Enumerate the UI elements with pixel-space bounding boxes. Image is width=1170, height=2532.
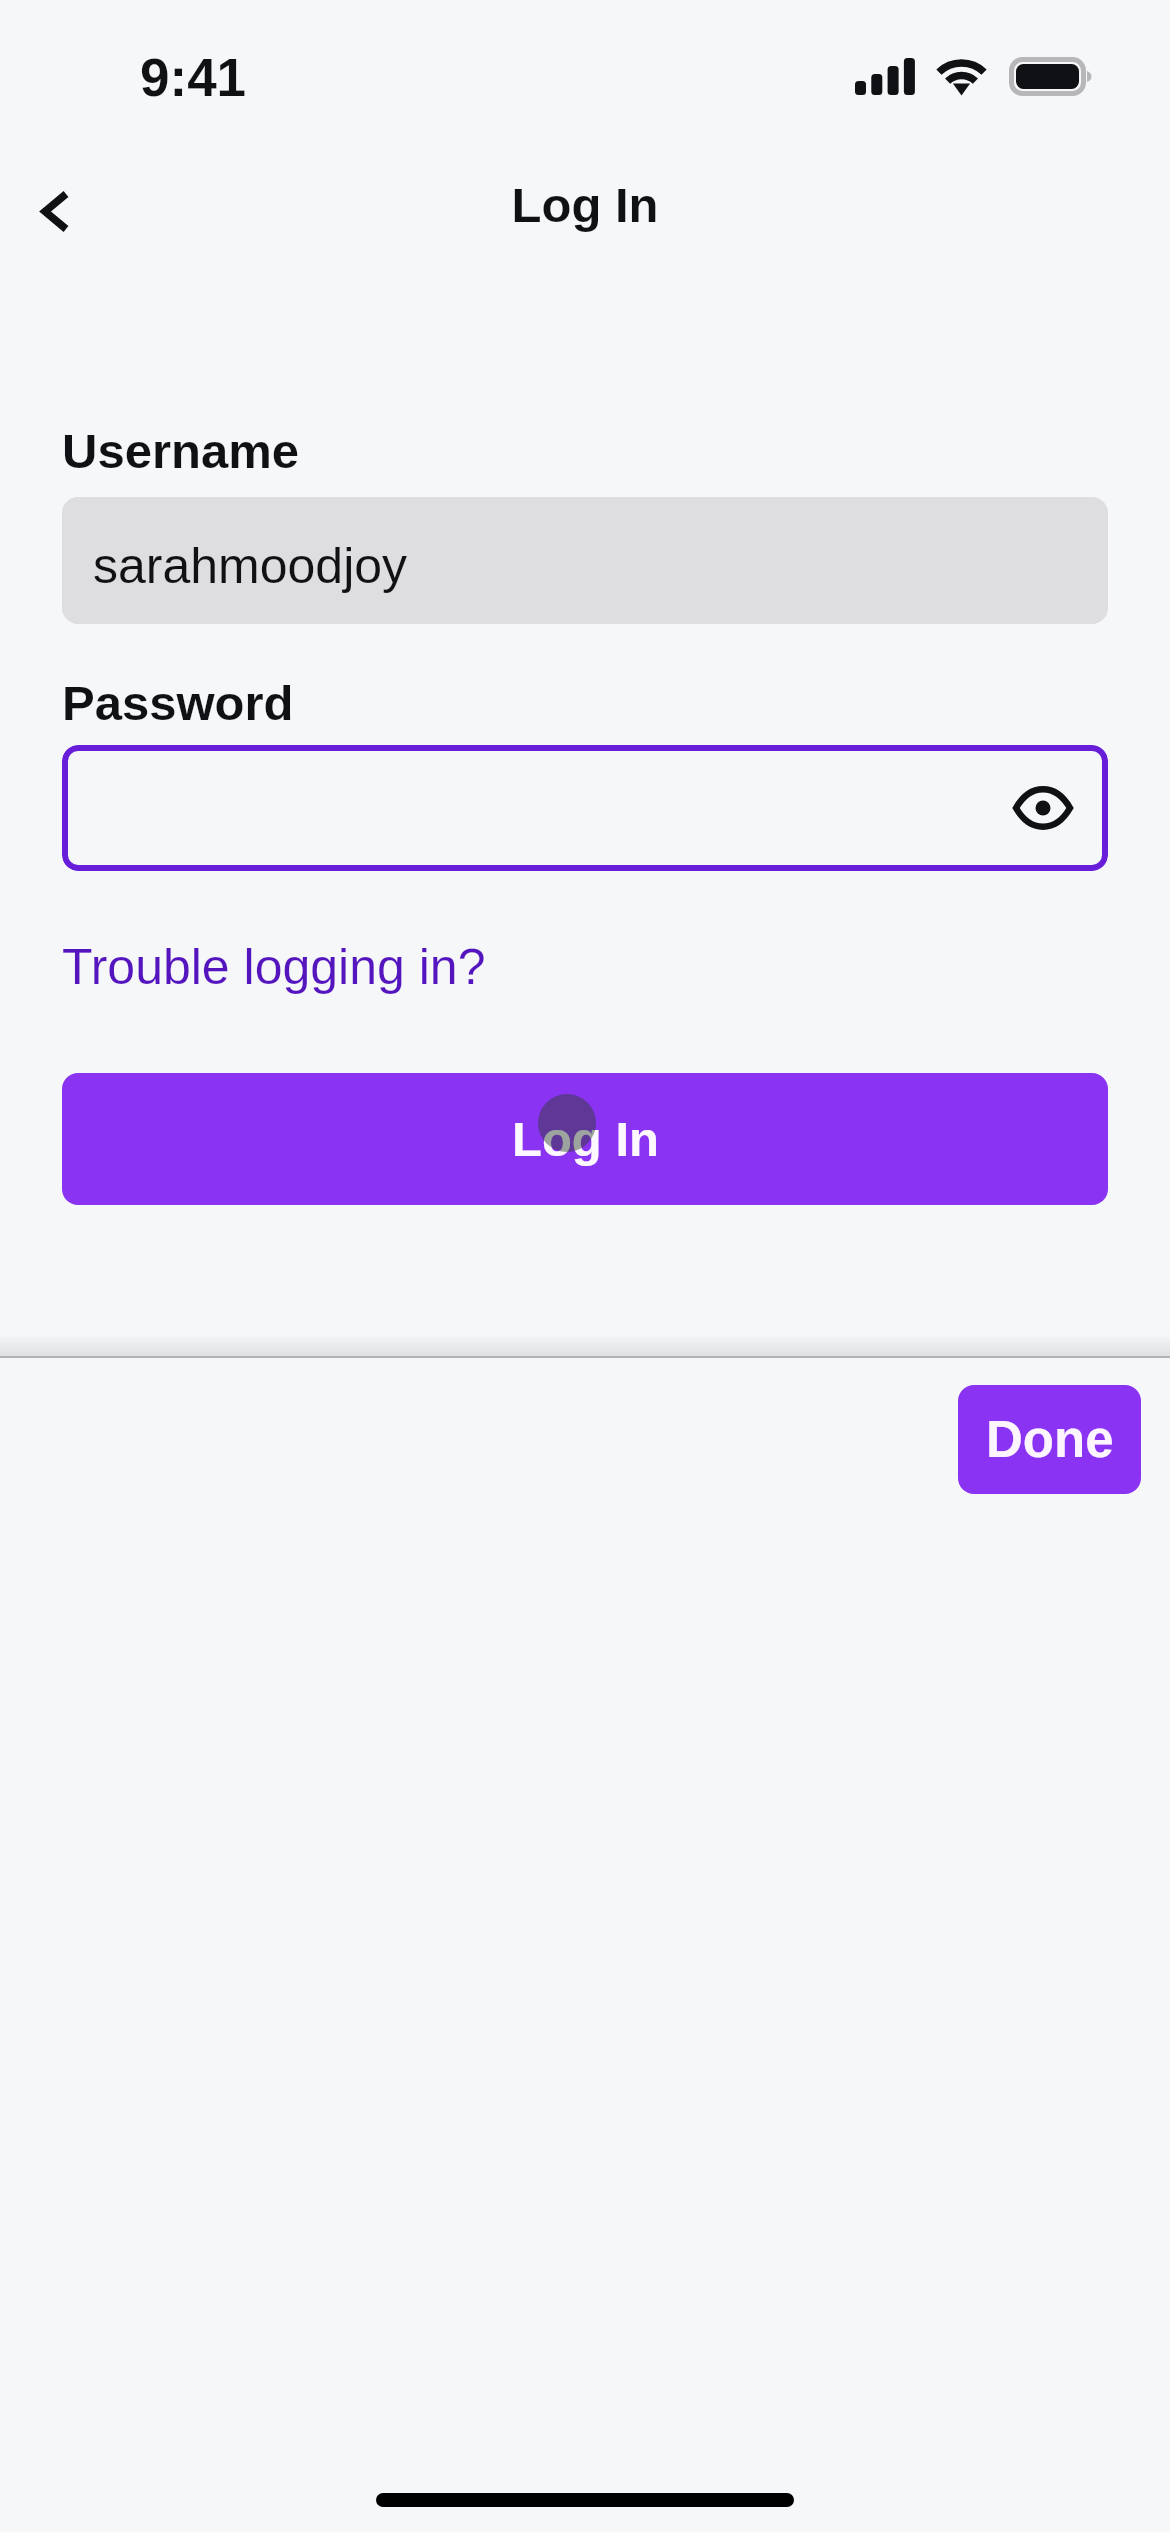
staticText: sarahmoodjoy — [93, 538, 408, 594]
staticText: Log In — [512, 1112, 659, 1167]
staticText: Done — [986, 1411, 1114, 1468]
button[interactable]: Username field — [62, 497, 1108, 624]
button[interactable]: Back — [0, 160, 112, 264]
staticText: Log In — [0, 178, 1170, 233]
button[interactable]: Trouble logging in? — [62, 939, 486, 995]
staticText: Username — [62, 424, 299, 479]
button[interactable]: Password field — [62, 745, 1108, 871]
staticText: 9:41 — [140, 48, 247, 107]
button[interactable]: Show password — [998, 763, 1088, 853]
button[interactable]: Log In — [62, 1073, 1108, 1205]
staticText: Trouble logging in? — [62, 939, 486, 995]
staticText: Password — [62, 676, 294, 731]
other: Signal, Wi-Fi and battery status — [850, 50, 1110, 106]
button[interactable]: Done — [958, 1385, 1141, 1494]
